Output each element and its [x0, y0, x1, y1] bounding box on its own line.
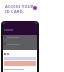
button[interactable]	[4, 43, 36, 45]
other: Logo	[33, 6, 37, 10]
staticText: ID CARD.	[5, 9, 24, 14]
button[interactable]	[4, 36, 36, 38]
staticText: ACCESS YOUR	[5, 4, 34, 9]
